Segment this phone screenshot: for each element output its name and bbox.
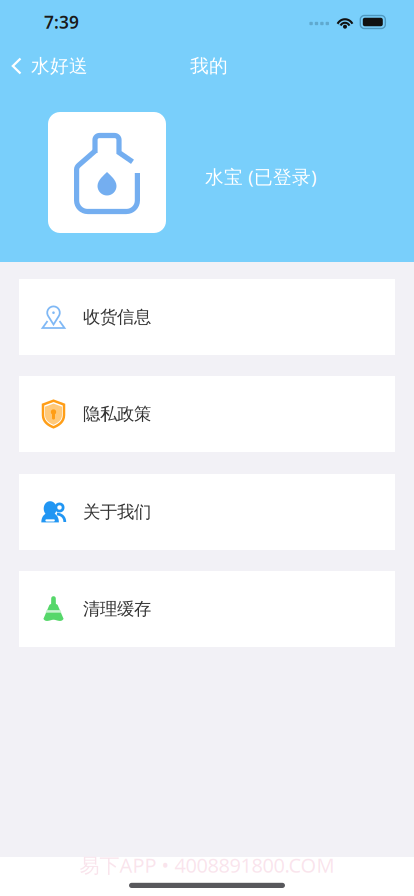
button[interactable]: 清理缓存 — [19, 571, 395, 647]
staticText: 水好送 — [31, 54, 88, 77]
button[interactable]: 水好送 — [0, 44, 96, 88]
staticText: 水宝 (已登录) — [205, 164, 317, 189]
button[interactable]: 隐私政策 — [19, 376, 395, 452]
button[interactable]: 关于我们 — [19, 474, 395, 550]
staticText: 关于我们 — [83, 501, 151, 523]
button[interactable]: 收货信息 — [19, 279, 395, 355]
staticText: 收货信息 — [83, 306, 151, 328]
staticText: 7:39 — [44, 10, 79, 33]
staticText: 我的 — [190, 54, 228, 77]
staticText: 隐私政策 — [83, 403, 151, 425]
staticText: 清理缓存 — [83, 598, 151, 620]
staticText: 易下APP • 4008891800.COM — [79, 852, 334, 878]
